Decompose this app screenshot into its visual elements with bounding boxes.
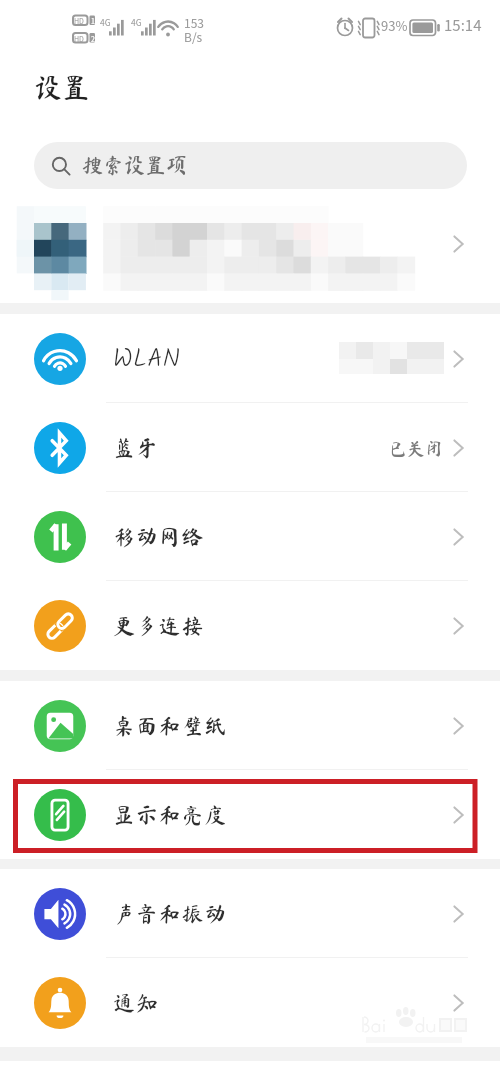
button[interactable]: WLAN xyxy=(0,314,500,403)
staticText: 通知 xyxy=(113,992,159,1014)
button[interactable]: 桌面和壁纸 xyxy=(0,681,500,770)
staticText: 1 xyxy=(91,16,95,26)
staticText: 显示和亮度 xyxy=(113,804,228,826)
staticText: 桌面和壁纸 xyxy=(113,715,228,737)
staticText: WLAN xyxy=(113,339,181,379)
button[interactable]: 通知 xyxy=(0,958,500,1047)
staticText: HD xyxy=(74,34,84,44)
staticText: 声音和振动 xyxy=(113,903,228,925)
staticText: 93% xyxy=(381,16,408,35)
staticText: 移动网络 xyxy=(113,526,205,548)
staticText: 搜索设置项 xyxy=(82,155,187,176)
staticText: 4G xyxy=(131,16,142,28)
staticText: 153 xyxy=(184,14,204,31)
other: Baidu watermark xyxy=(360,1007,472,1045)
button[interactable]: 移动网络 xyxy=(0,492,500,581)
staticText: 2 xyxy=(91,34,95,44)
button[interactable]: 蓝牙 xyxy=(0,403,500,492)
staticText: 已关闭 xyxy=(389,439,443,457)
staticText: 4G xyxy=(100,16,111,28)
button[interactable]: 更多连接 xyxy=(0,581,500,670)
staticText: 蓝牙 xyxy=(113,437,159,459)
staticText: HD xyxy=(74,16,84,26)
staticText: 更多连接 xyxy=(113,615,205,637)
button[interactable]: 显示和亮度 xyxy=(0,770,500,859)
staticText: 15:14 xyxy=(444,14,482,36)
button[interactable]: 搜索设置项 xyxy=(34,142,467,189)
button[interactable] xyxy=(0,196,500,303)
button[interactable]: 声音和振动 xyxy=(0,869,500,958)
staticText: 设置 xyxy=(34,73,91,101)
staticText: B/s xyxy=(184,28,203,45)
